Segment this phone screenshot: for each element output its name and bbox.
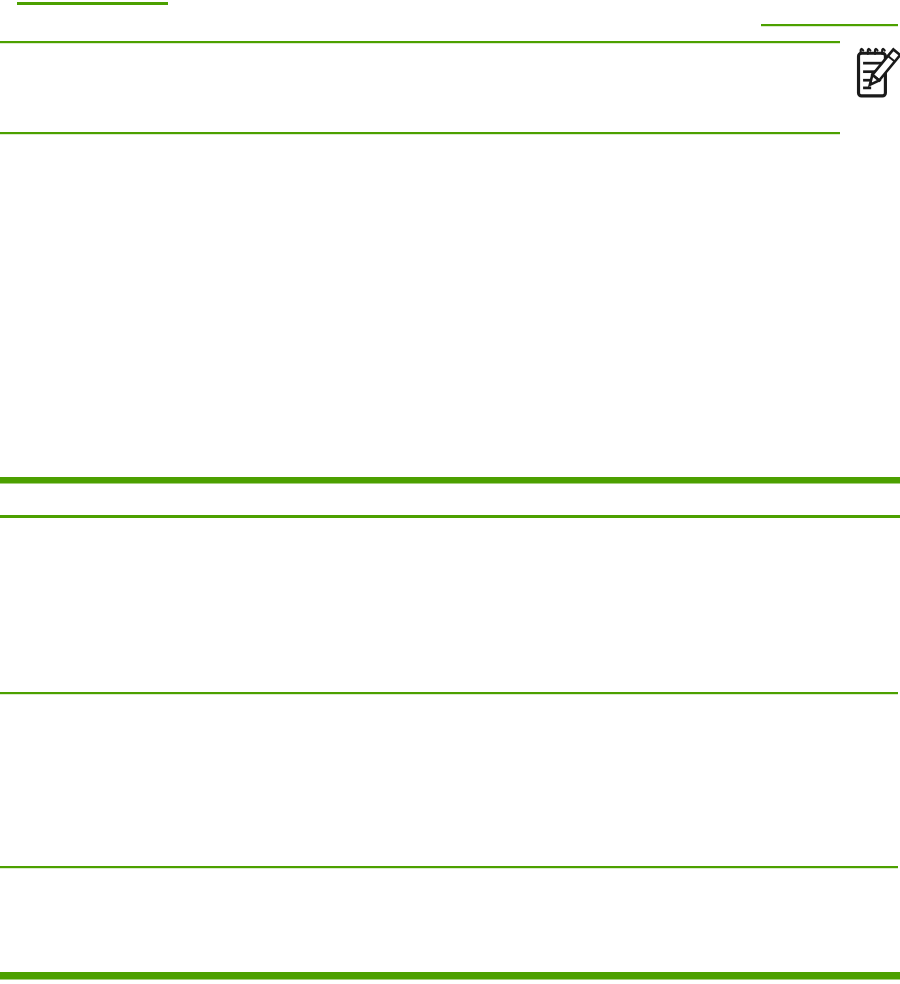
button[interactable]: Note	[856, 46, 898, 98]
